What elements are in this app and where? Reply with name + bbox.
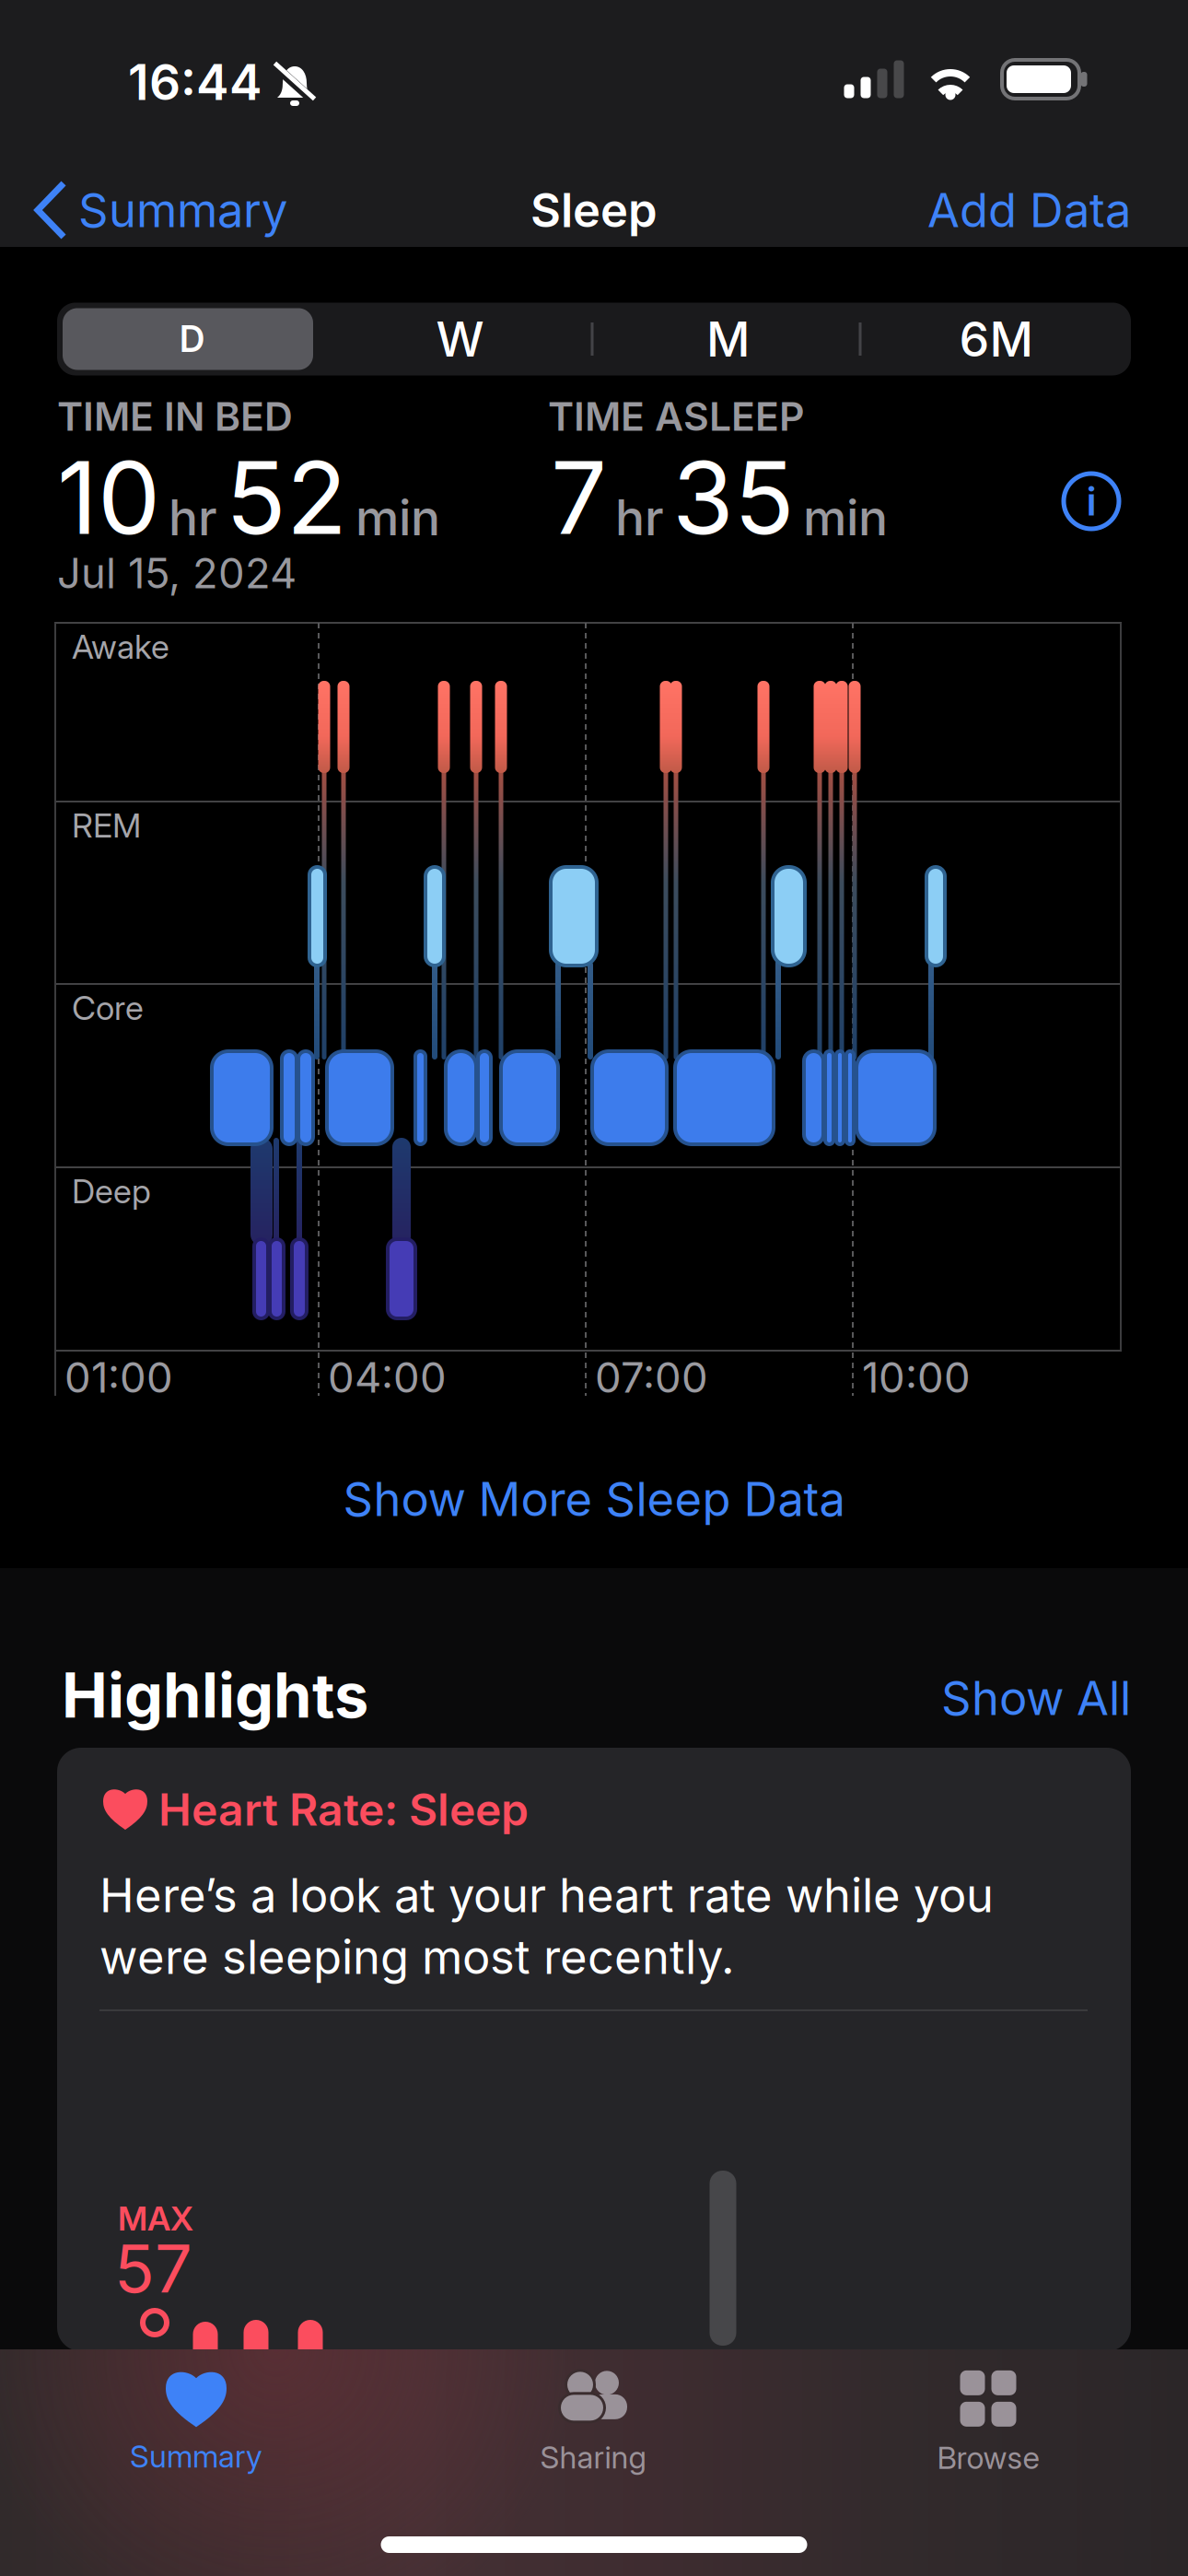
button[interactable]: Show More Sleep Data — [343, 1471, 845, 1527]
button[interactable]: Show All — [855, 1670, 1131, 1726]
staticText: 16:44 — [128, 53, 262, 111]
button[interactable]: Heart Rate: Sleep — [57, 1748, 1131, 2351]
staticText: 57 — [114, 2229, 192, 2307]
staticText: Jul 15, 2024 — [57, 548, 297, 598]
staticText: Awake — [72, 627, 169, 666]
button[interactable]: Add Data — [763, 183, 1131, 238]
staticText: were sleeping most recently. — [99, 1929, 735, 1984]
staticText: Core — [72, 988, 144, 1028]
staticText: Sleep — [530, 183, 658, 238]
staticText: 10:00 — [862, 1353, 971, 1402]
button[interactable]: Summary — [38, 178, 342, 242]
staticText: 6M — [959, 311, 1033, 367]
button[interactable]: W — [326, 303, 594, 375]
button[interactable]: Browse — [850, 2359, 1126, 2488]
staticText: 04:00 — [328, 1353, 447, 1402]
staticText: MAX — [118, 2199, 193, 2238]
staticText: Here’s a look at your heart rate while y… — [99, 1868, 994, 1923]
button[interactable]: Summary — [58, 2359, 334, 2488]
staticText: Show All — [941, 1670, 1131, 1726]
staticText: TIME ASLEEP — [548, 393, 805, 440]
staticText: 35 — [672, 439, 795, 556]
staticText: Browse — [937, 2439, 1039, 2476]
staticText: D — [180, 318, 204, 360]
staticText: min — [355, 488, 440, 546]
staticText: 52 — [226, 439, 347, 556]
staticText: i — [1086, 478, 1096, 524]
staticText: REM — [72, 806, 141, 845]
staticText: 01:00 — [64, 1353, 173, 1402]
button[interactable]: D — [58, 303, 326, 375]
button[interactable]: Sharing — [455, 2359, 731, 2488]
button[interactable]: i — [1063, 473, 1120, 530]
staticText: Sharing — [540, 2439, 646, 2475]
staticText: TIME IN BED — [57, 393, 293, 440]
staticText: Summary — [78, 183, 287, 238]
staticText: 07:00 — [595, 1353, 708, 1402]
staticText: 10 — [57, 439, 160, 556]
staticText: hr — [615, 488, 664, 546]
button[interactable]: M — [594, 303, 862, 375]
staticText: Deep — [72, 1172, 151, 1211]
staticText: Summary — [130, 2438, 262, 2474]
button[interactable]: 6M — [862, 303, 1130, 375]
staticText: hr — [169, 488, 217, 546]
staticText: Heart Rate: Sleep — [158, 1783, 529, 1836]
staticText: Show More Sleep Data — [343, 1471, 845, 1527]
staticText: min — [803, 488, 888, 546]
staticText: M — [706, 311, 750, 367]
staticText: Highlights — [62, 1659, 368, 1731]
staticText: Add Data — [927, 183, 1131, 238]
staticText: W — [436, 311, 484, 367]
staticText: 7 — [551, 439, 607, 556]
